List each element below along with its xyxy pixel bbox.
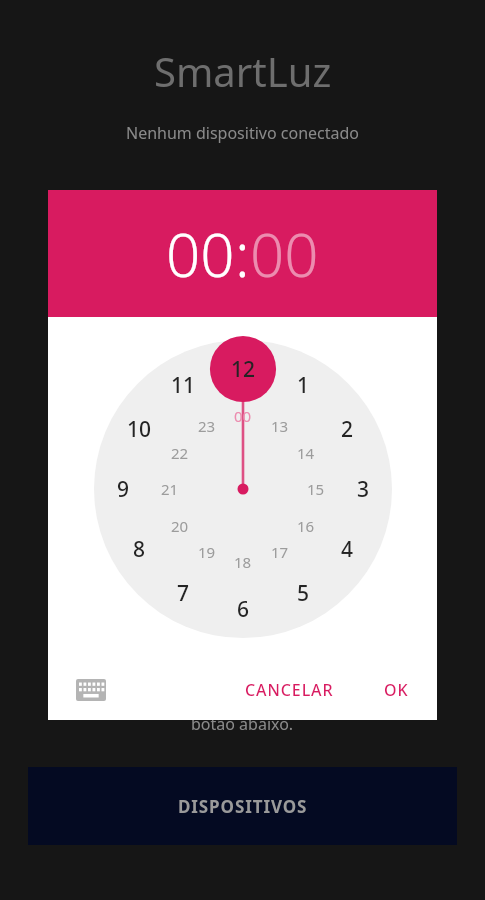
staticText: 4 (341, 535, 354, 564)
staticText: 10 (127, 415, 152, 444)
button[interactable]: 2 (341, 415, 354, 444)
staticText: 9 (117, 475, 130, 504)
staticText: botão abaixo. (191, 713, 294, 735)
button[interactable]: 13 (271, 416, 289, 436)
button[interactable]: 1 (297, 371, 310, 400)
staticText: 22 (171, 443, 189, 463)
button[interactable]: 17 (271, 542, 289, 562)
staticText: 1 (297, 371, 310, 400)
button[interactable]: 23 (198, 416, 216, 436)
button[interactable]: 3 (357, 475, 370, 504)
button[interactable]: 00 (166, 213, 235, 295)
staticText: 6 (237, 595, 250, 624)
button[interactable]: CANCELAR (233, 670, 346, 710)
button[interactable]: 6 (237, 595, 250, 624)
staticText: Nenhum dispositivo conectado (126, 122, 360, 144)
staticText: 19 (198, 542, 216, 562)
button[interactable]: 00 (234, 406, 252, 426)
staticText: 23 (198, 416, 216, 436)
button[interactable]: 14 (297, 443, 315, 463)
button[interactable]: 20 (171, 516, 189, 536)
staticText: 12 (231, 355, 256, 384)
button[interactable]: 9 (117, 475, 130, 504)
staticText: : (235, 213, 250, 295)
staticText: 2 (341, 415, 354, 444)
staticText: 17 (271, 542, 289, 562)
button[interactable]: Alternar para entrada por teclado (72, 671, 110, 709)
button[interactable]: OK (372, 670, 421, 710)
staticText: 21 (161, 479, 179, 499)
button[interactable]: 15 (307, 479, 325, 499)
staticText: 13 (271, 416, 289, 436)
staticText: 5 (297, 579, 310, 608)
button[interactable]: 00 (250, 213, 319, 295)
button[interactable]: 5 (297, 579, 310, 608)
button[interactable]: 16 (297, 516, 315, 536)
staticText: CANCELAR (245, 679, 334, 701)
staticText: OK (384, 679, 409, 701)
button[interactable]: 8 (133, 535, 146, 564)
staticText: 7 (177, 579, 190, 608)
staticText: 16 (297, 516, 315, 536)
button[interactable]: 22 (171, 443, 189, 463)
staticText: 20 (171, 516, 189, 536)
button[interactable]: 10 (127, 415, 152, 444)
staticText: 00 (234, 406, 252, 426)
button[interactable]: 4 (341, 535, 354, 564)
button[interactable]: 18 (234, 552, 252, 572)
button[interactable]: 12 (231, 355, 256, 384)
staticText: DISPOSITIVOS (178, 795, 308, 818)
staticText: SmartLuz (154, 44, 332, 98)
staticText: 3 (357, 475, 370, 504)
staticText: 14 (297, 443, 315, 463)
staticText: 15 (307, 479, 325, 499)
button[interactable]: 11 (171, 371, 196, 400)
staticText: 18 (234, 552, 252, 572)
staticText: 8 (133, 535, 146, 564)
button[interactable]: 19 (198, 542, 216, 562)
button[interactable]: DISPOSITIVOS (28, 767, 457, 845)
staticText: 11 (171, 371, 196, 400)
button[interactable]: 21 (161, 479, 179, 499)
button[interactable]: 7 (177, 579, 190, 608)
